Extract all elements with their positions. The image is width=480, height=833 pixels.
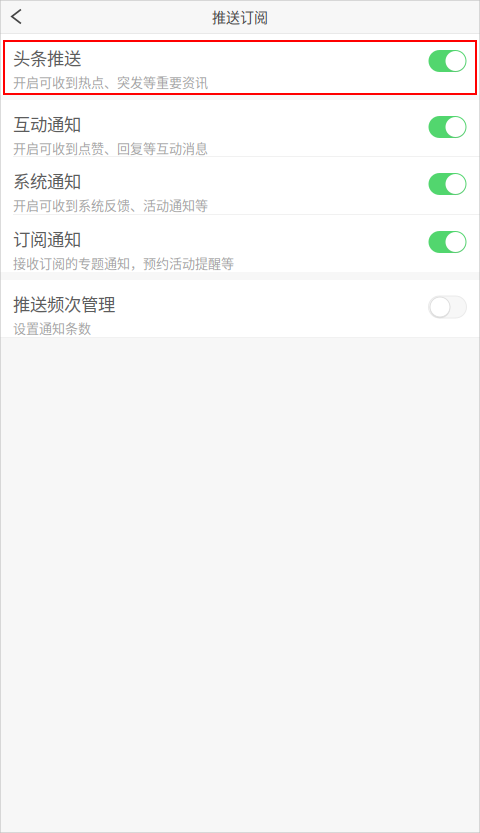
staticText: 订阅通知 (13, 226, 81, 251)
button[interactable]: Back (0, 0, 34, 32)
staticText: 接收订阅的专题通知，预约活动提醒等 (13, 253, 234, 272)
staticText: 开启可收到系统反馈、活动通知等 (13, 195, 208, 214)
staticText: 开启可收到热点、突发等重要资讯 (13, 72, 208, 91)
button[interactable]: 开 (0, 157, 480, 214)
staticText: 互动通知 (13, 111, 81, 136)
button[interactable]: 开 (0, 215, 480, 272)
staticText: 头条推送 (13, 45, 81, 70)
staticText: 设置通知条数 (13, 318, 91, 337)
button[interactable]: 开 (0, 100, 480, 156)
staticText: 推送订阅 (212, 6, 268, 27)
button[interactable]: 开 (0, 34, 480, 95)
staticText: 推送频次管理 (13, 291, 115, 316)
button[interactable]: 关 (0, 280, 480, 337)
staticText: 开启可收到点赞、回复等互动消息 (13, 138, 208, 157)
staticText: 系统通知 (13, 168, 81, 193)
